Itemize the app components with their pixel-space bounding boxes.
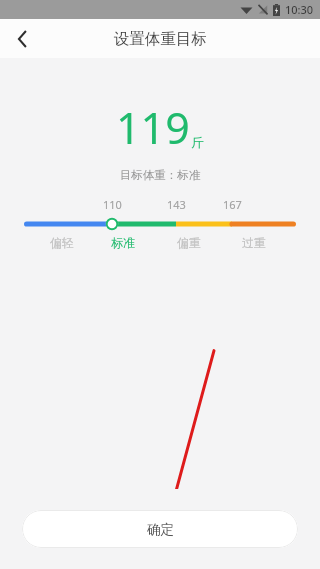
button[interactable]: 确定 (22, 510, 298, 548)
staticText: 119 (116, 98, 190, 157)
staticText: 偏重 (177, 235, 201, 250)
staticText: 偏轻 (50, 235, 74, 250)
staticText: 167 (223, 197, 242, 212)
staticText: 目标体重：标准 (0, 168, 320, 182)
staticText: 110 (103, 197, 122, 212)
staticText: 标准 (111, 235, 135, 250)
staticText: 143 (167, 197, 186, 212)
button[interactable]: Back (0, 19, 44, 58)
staticText: 10:30 (285, 2, 314, 17)
staticText: 过重 (242, 235, 266, 250)
staticText: 斤 (191, 135, 204, 151)
staticText: 确定 (147, 521, 174, 538)
staticText: 设置体重目标 (114, 29, 207, 49)
